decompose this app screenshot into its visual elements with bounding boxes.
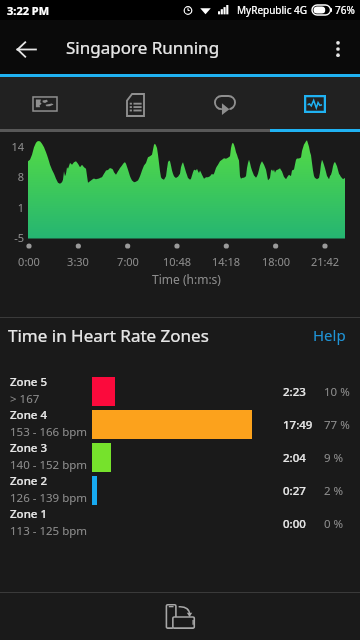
- staticText: > 167: [10, 391, 40, 407]
- button[interactable]: Map: [0, 77, 90, 132]
- staticText: 0:00: [9, 254, 49, 269]
- button[interactable]: Zone 2: [0, 474, 360, 507]
- button[interactable]: Laps: [180, 77, 270, 132]
- staticText: Zone 5: [10, 374, 48, 390]
- staticText: 140 - 152 bpm: [10, 457, 88, 473]
- staticText: 14: [0, 139, 24, 154]
- staticText: 77 %: [324, 417, 350, 433]
- staticText: 113 - 125 bpm: [10, 523, 88, 539]
- staticText: 7:00: [108, 254, 148, 269]
- staticText: Zone 4: [10, 407, 48, 423]
- button[interactable]: More options: [316, 27, 360, 71]
- button[interactable]: Charts: [270, 77, 360, 132]
- staticText: -5: [0, 230, 24, 245]
- staticText: 3:30: [58, 254, 98, 269]
- staticText: 9 %: [324, 450, 344, 466]
- button[interactable]: Navigate up: [4, 27, 48, 71]
- staticText: 1: [0, 200, 24, 215]
- staticText: 0 %: [324, 516, 344, 532]
- staticText: Help: [313, 325, 346, 345]
- staticText: 21:42: [305, 254, 345, 269]
- staticText: 14:18: [206, 254, 246, 269]
- staticText: 76%: [335, 3, 355, 17]
- staticText: 2 %: [324, 483, 344, 499]
- staticText: 126 - 139 bpm: [10, 490, 88, 506]
- button[interactable]: Zone 4: [0, 408, 360, 441]
- button[interactable]: Help: [299, 318, 360, 352]
- button[interactable]: Zone 3: [0, 441, 360, 474]
- staticText: 153 - 166 bpm: [10, 424, 88, 440]
- staticText: 17:49: [283, 417, 313, 433]
- button[interactable]: Zone 1: [0, 507, 360, 540]
- button[interactable]: Zone 5: [0, 375, 360, 408]
- staticText: 10:48: [157, 254, 197, 269]
- staticText: 8: [0, 169, 24, 184]
- staticText: MyRepublic 4G: [237, 3, 308, 17]
- staticText: 10 %: [324, 384, 350, 400]
- staticText: 0:27: [283, 483, 306, 499]
- button[interactable]: Details: [90, 77, 180, 132]
- staticText: 18:00: [256, 254, 296, 269]
- staticText: 3:22 PM: [7, 3, 50, 18]
- staticText: 2:23: [283, 384, 306, 400]
- staticText: Time in Heart Rate Zones: [8, 324, 209, 347]
- staticText: Zone 1: [10, 506, 48, 522]
- staticText: Zone 3: [10, 440, 48, 456]
- button[interactable]: Rotate screen: [157, 594, 203, 640]
- staticText: 2:04: [283, 450, 306, 466]
- staticText: Time (h:m:s): [28, 271, 345, 287]
- staticText: 0:00: [283, 516, 306, 532]
- staticText: Singapore Running: [66, 36, 220, 59]
- staticText: Zone 2: [10, 473, 48, 489]
